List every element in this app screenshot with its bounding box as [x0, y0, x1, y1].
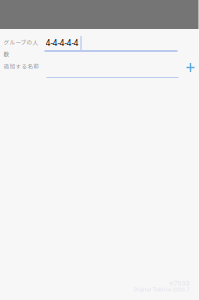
button[interactable]: [46, 63, 178, 78]
staticText: 追加する名前: [3, 62, 39, 70]
staticText: 数: [3, 50, 9, 58]
button[interactable]: 4-4-4-4-4: [44, 36, 178, 52]
staticText: 4-4-4-4-4: [45, 38, 78, 48]
staticText: e7033: [169, 279, 189, 288]
staticText: グループの人: [3, 38, 38, 46]
button[interactable]: Add name: [181, 58, 199, 76]
staticText: Digital Tabline 2023.7: [133, 286, 189, 293]
